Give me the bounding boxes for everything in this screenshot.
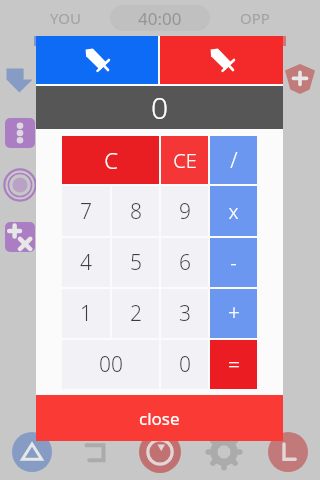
button[interactable]: =	[210, 340, 257, 389]
staticText: 2	[130, 299, 142, 328]
button[interactable]: x	[210, 186, 257, 236]
button[interactable]: 1	[62, 289, 110, 338]
button[interactable]: Tool	[5, 118, 35, 148]
staticText: 5	[130, 248, 142, 277]
button[interactable]: 7	[62, 186, 110, 236]
button[interactable]: 00	[62, 340, 159, 389]
staticText: 0	[179, 350, 191, 379]
staticText: CE	[173, 147, 197, 174]
staticText: 00	[99, 350, 123, 379]
button[interactable]	[5, 64, 35, 94]
staticText: 8	[130, 197, 142, 226]
button[interactable]: Navigation action	[192, 424, 256, 480]
button[interactable]: 2	[112, 289, 159, 338]
button[interactable]: CE	[161, 136, 208, 184]
button[interactable]: 5	[112, 238, 159, 287]
button[interactable]: 3	[161, 289, 208, 338]
staticText: 0	[151, 87, 169, 128]
staticText: /	[230, 146, 238, 175]
staticText: 7	[80, 197, 92, 226]
staticText: +	[228, 299, 240, 328]
staticText: YOU	[50, 8, 81, 28]
button[interactable]: 6	[161, 238, 208, 287]
staticText: OPP	[240, 8, 270, 28]
button[interactable]: 8	[112, 186, 159, 236]
button[interactable]: Navigation action	[0, 424, 64, 480]
staticText: 1	[80, 299, 92, 328]
button[interactable]: Tool	[5, 222, 35, 252]
button[interactable]	[285, 64, 315, 94]
button[interactable]: 40:00	[110, 5, 210, 31]
staticText: =	[228, 350, 240, 379]
button[interactable]: Navigation action	[128, 424, 192, 480]
button[interactable]: 4	[62, 238, 110, 287]
button[interactable]	[3, 168, 37, 202]
button[interactable]: +	[210, 289, 257, 338]
button[interactable]: /	[210, 136, 257, 184]
staticText: 3	[179, 299, 191, 328]
button[interactable]: Attack opponent	[160, 36, 283, 84]
button[interactable]: 9	[161, 186, 208, 236]
button[interactable]: Attack you	[36, 36, 158, 84]
staticText: 6	[179, 248, 191, 277]
button[interactable]: 0	[161, 340, 208, 389]
staticText: 40:00	[138, 7, 182, 30]
button[interactable]: -	[210, 238, 257, 287]
staticText: x	[228, 198, 239, 225]
staticText: 9	[179, 197, 191, 226]
staticText: close	[139, 407, 180, 430]
staticText: -	[230, 249, 237, 276]
staticText: 4	[80, 248, 92, 277]
button[interactable]: Navigation action	[64, 424, 128, 480]
button[interactable]: close	[36, 395, 283, 441]
staticText: C	[104, 145, 118, 175]
button[interactable]: C	[62, 136, 159, 184]
button[interactable]: Navigation action	[256, 424, 320, 480]
